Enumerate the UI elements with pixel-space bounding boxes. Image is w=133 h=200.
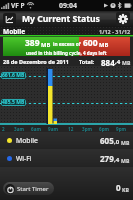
staticText: 600 [83, 37, 98, 49]
staticText: ,0 [114, 138, 120, 146]
button[interactable]: Wi-Fi [0, 150, 133, 167]
staticText: Mobile [16, 136, 38, 145]
staticText: used in this billing cycle, 4 days left [26, 50, 107, 56]
staticText: 3pm [82, 126, 93, 132]
staticText: 09:04 [59, 1, 77, 11]
staticText: MB [121, 157, 130, 164]
staticText: 1/12 - 31/12 [99, 28, 131, 35]
staticText: My Current Status [22, 13, 100, 25]
staticText: KB [122, 186, 129, 193]
staticText: ,4 [115, 58, 121, 66]
staticText: in excess of [53, 41, 81, 48]
button[interactable]: Settings [116, 12, 130, 26]
staticText: 389 [25, 37, 40, 49]
staticText: Start Timer [17, 185, 49, 193]
staticText: MB [99, 41, 109, 49]
button[interactable]: Mobile [0, 132, 133, 149]
staticText: Wi-Fi [16, 154, 32, 163]
staticText: 9pm [116, 126, 127, 132]
staticText: MB [41, 41, 51, 49]
staticText: 12 [68, 126, 74, 132]
staticText: MB [122, 59, 131, 66]
staticText: 9am [48, 126, 58, 132]
staticText: 0 [116, 182, 121, 193]
staticText: 28 de Dezembro de 2011 [3, 58, 69, 65]
staticText: 2 [2, 126, 5, 132]
staticText: 6am [31, 126, 41, 132]
staticText: 3am [14, 126, 24, 132]
staticText: 884 [101, 57, 115, 66]
staticText: 485,5 MB [2, 99, 25, 106]
button[interactable]: Start Timer [3, 182, 54, 195]
staticText: ,4 [114, 156, 120, 164]
staticText: Mobile [3, 27, 26, 35]
staticText: Total: [79, 58, 95, 65]
staticText: VF P [11, 1, 25, 10]
staticText: MB [121, 139, 130, 146]
staticText: 605 [100, 135, 114, 146]
staticText: 279 [100, 153, 114, 164]
staticText: 661,6 MB [2, 72, 25, 79]
staticText: 6pm [99, 126, 110, 132]
